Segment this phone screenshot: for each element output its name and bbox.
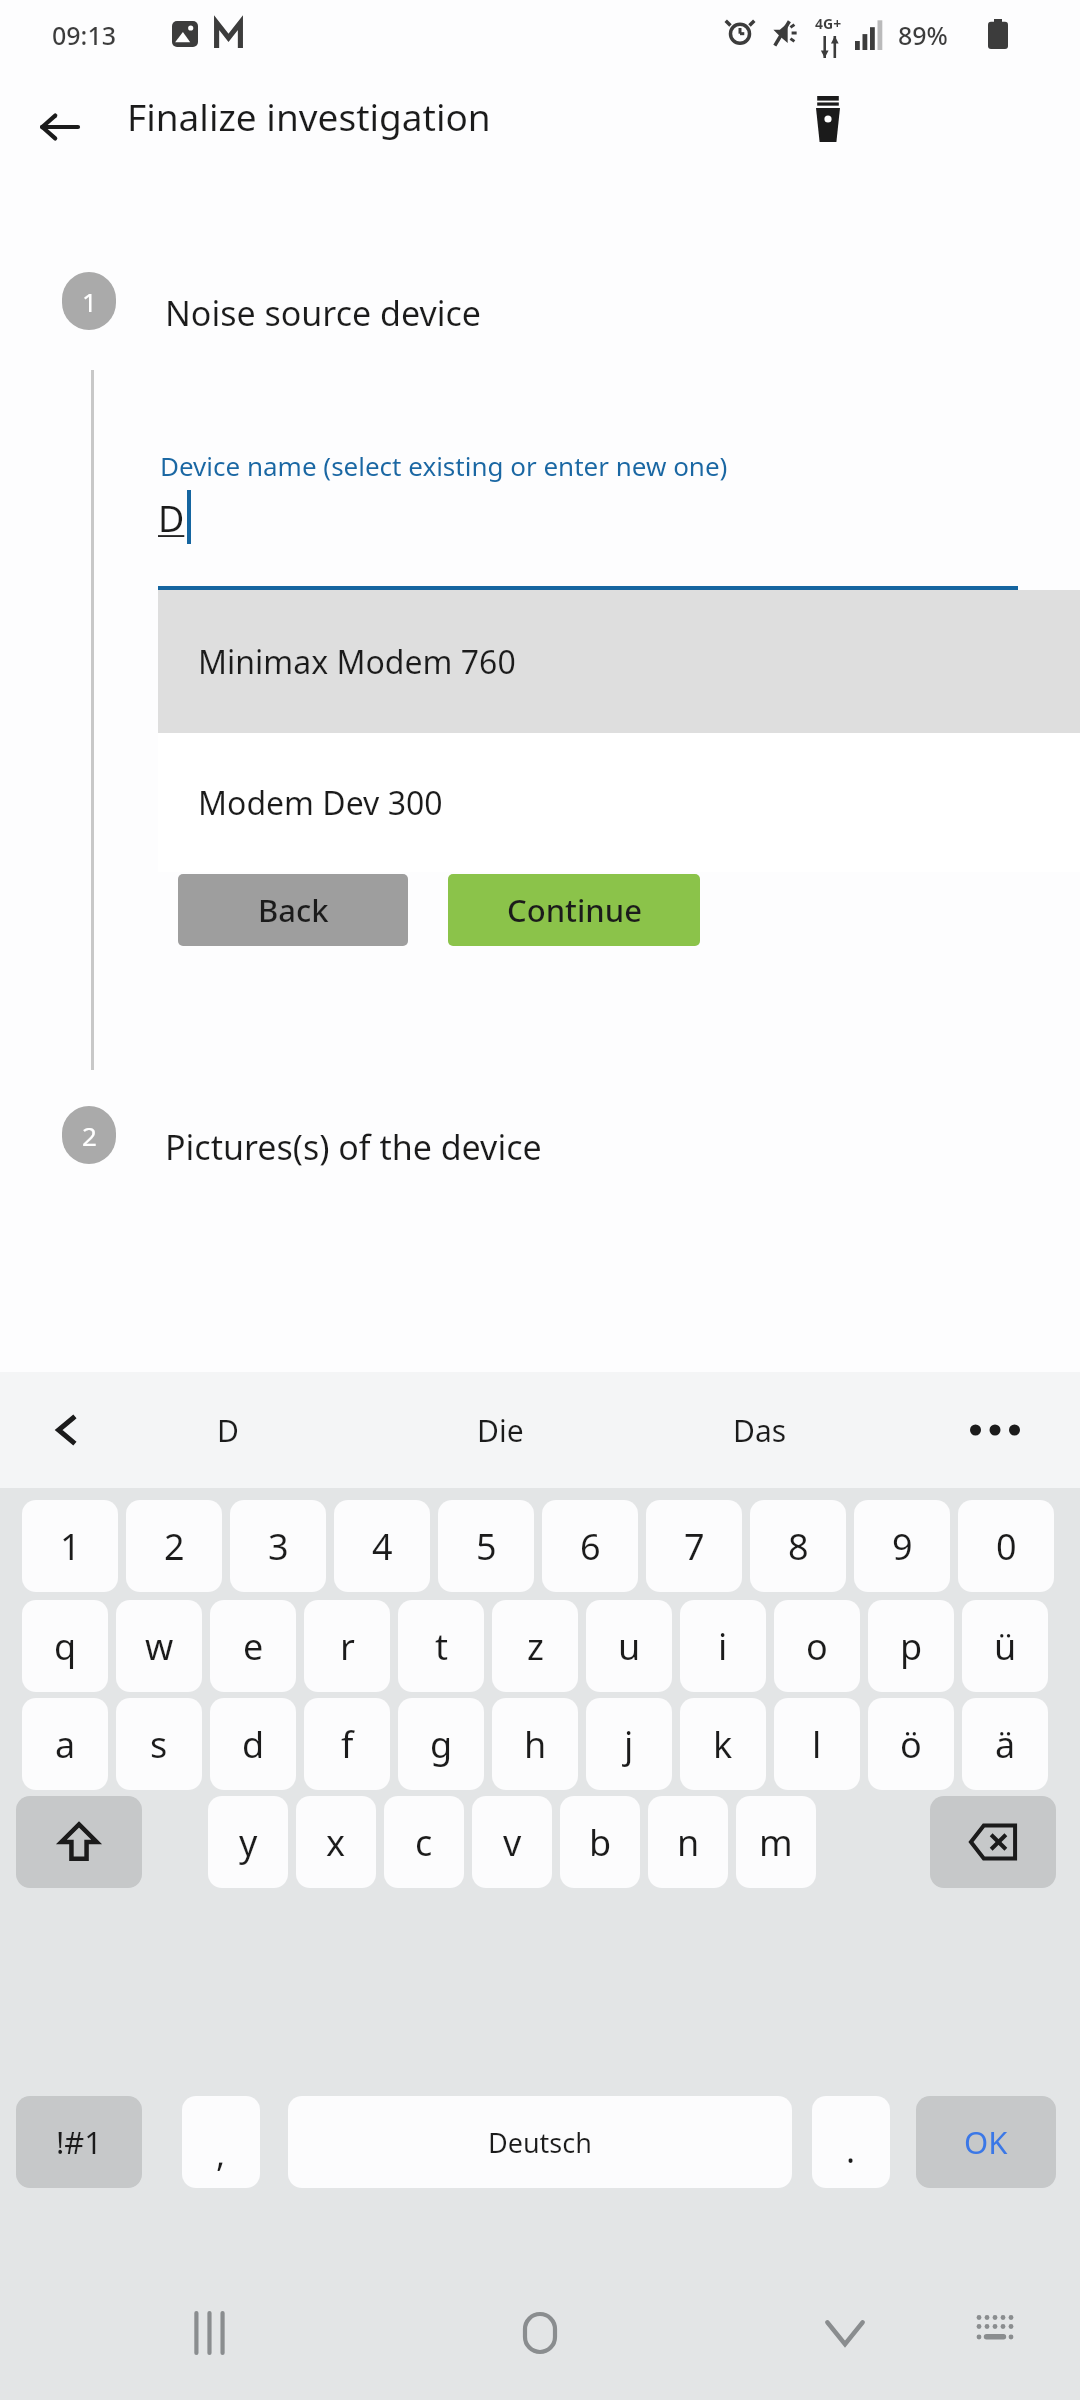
button[interactable]: , xyxy=(182,2096,260,2188)
staticText: y xyxy=(239,1818,258,1867)
button[interactable]: h xyxy=(492,1698,578,1790)
button[interactable]: c xyxy=(384,1796,464,1888)
button[interactable]: a xyxy=(22,1698,108,1790)
button[interactable]: Home xyxy=(485,2278,595,2388)
button[interactable]: D xyxy=(128,1372,328,1488)
button[interactable]: 9 xyxy=(854,1500,950,1592)
staticText: u xyxy=(618,1622,641,1671)
staticText: Deutsch xyxy=(488,2124,592,2161)
button[interactable]: f xyxy=(304,1698,390,1790)
staticText: 8 xyxy=(788,1522,809,1571)
staticText: j xyxy=(624,1720,634,1769)
button[interactable]: w xyxy=(116,1600,202,1692)
button[interactable]: q xyxy=(22,1600,108,1692)
staticText: q xyxy=(54,1622,77,1671)
staticText: c xyxy=(415,1818,433,1867)
staticText: z xyxy=(527,1622,544,1671)
button[interactable]: 3 xyxy=(230,1500,326,1592)
staticText: e xyxy=(243,1622,264,1671)
button[interactable]: Modem Dev 300 xyxy=(158,733,1080,872)
button[interactable]: . xyxy=(812,2096,890,2188)
button[interactable]: l xyxy=(774,1698,860,1790)
staticText: s xyxy=(150,1720,168,1769)
button[interactable]: 6 xyxy=(542,1500,638,1592)
button[interactable]: Recents xyxy=(155,2278,265,2388)
button[interactable]: e xyxy=(210,1600,296,1692)
button[interactable]: Backspace xyxy=(930,1796,1056,1888)
button[interactable]: More options xyxy=(940,1372,1050,1488)
button[interactable]: 2 xyxy=(126,1500,222,1592)
staticText: t xyxy=(435,1622,448,1671)
staticText: m xyxy=(759,1818,793,1867)
button[interactable]: o xyxy=(774,1600,860,1692)
button[interactable]: Previous suggestions xyxy=(22,1372,112,1488)
staticText: o xyxy=(806,1622,828,1671)
staticText: 6 xyxy=(580,1522,601,1571)
button[interactable]: j xyxy=(586,1698,672,1790)
staticText: 4 xyxy=(372,1522,393,1571)
button[interactable]: 5 xyxy=(438,1500,534,1592)
button[interactable]: Change keyboard xyxy=(945,2278,1045,2378)
button[interactable]: p xyxy=(868,1600,954,1692)
button[interactable]: 0 xyxy=(958,1500,1054,1592)
staticText: Modem Dev 300 xyxy=(198,781,443,825)
button[interactable]: Minimax Modem 760 xyxy=(158,590,1080,733)
button[interactable]: !#1 xyxy=(16,2096,142,2188)
staticText: 5 xyxy=(476,1522,497,1571)
button[interactable]: k xyxy=(680,1698,766,1790)
staticText: 7 xyxy=(684,1522,705,1571)
button[interactable]: 8 xyxy=(750,1500,846,1592)
staticText: 2 xyxy=(164,1522,185,1571)
button[interactable]: d xyxy=(210,1698,296,1790)
button[interactable]: 1 xyxy=(22,1500,118,1592)
staticText: 1 xyxy=(82,284,97,319)
staticText: i xyxy=(718,1622,728,1671)
button[interactable]: Das xyxy=(660,1372,860,1488)
button[interactable]: n xyxy=(648,1796,728,1888)
staticText: ü xyxy=(994,1622,1017,1671)
button[interactable]: ö xyxy=(868,1698,954,1790)
button[interactable]: Back xyxy=(178,874,408,946)
button[interactable]: t xyxy=(398,1600,484,1692)
button[interactable]: m xyxy=(736,1796,816,1888)
staticText: 4G+ xyxy=(815,14,842,33)
staticText: Minimax Modem 760 xyxy=(198,640,516,684)
button[interactable]: s xyxy=(116,1698,202,1790)
button[interactable]: u xyxy=(586,1600,672,1692)
button[interactable]: g xyxy=(398,1698,484,1790)
staticText: . xyxy=(846,2127,856,2173)
staticText: p xyxy=(900,1622,923,1671)
staticText: 9 xyxy=(892,1522,913,1571)
staticText: h xyxy=(524,1720,547,1769)
button[interactable]: v xyxy=(472,1796,552,1888)
button[interactable]: Deutsch xyxy=(288,2096,792,2188)
button[interactable]: r xyxy=(304,1600,390,1692)
button[interactable]: 7 xyxy=(646,1500,742,1592)
staticText: D xyxy=(158,494,185,543)
button[interactable]: Flashlight xyxy=(795,86,861,152)
staticText: Das xyxy=(733,1410,787,1451)
button[interactable]: Hide keyboard xyxy=(790,2278,900,2388)
button[interactable]: OK xyxy=(916,2096,1056,2188)
button[interactable]: b xyxy=(560,1796,640,1888)
staticText: Finalize investigation xyxy=(127,91,491,141)
button[interactable]: i xyxy=(680,1600,766,1692)
button[interactable]: Continue xyxy=(448,874,700,946)
button[interactable]: Die xyxy=(400,1372,600,1488)
staticText: Noise source device xyxy=(165,290,481,336)
staticText: 1 xyxy=(60,1522,81,1571)
staticText: n xyxy=(677,1818,700,1867)
staticText: Device name (select existing or enter ne… xyxy=(160,448,728,483)
button[interactable]: z xyxy=(492,1600,578,1692)
button[interactable]: Shift xyxy=(16,1796,142,1888)
button[interactable]: ä xyxy=(962,1698,1048,1790)
staticText: k xyxy=(713,1720,733,1769)
staticText: , xyxy=(216,2131,226,2177)
staticText: OK xyxy=(964,2121,1008,2163)
button[interactable]: 4 xyxy=(334,1500,430,1592)
button[interactable]: ü xyxy=(962,1600,1048,1692)
button[interactable]: Back xyxy=(22,90,96,164)
staticText: l xyxy=(812,1720,822,1769)
button[interactable]: y xyxy=(208,1796,288,1888)
button[interactable]: x xyxy=(296,1796,376,1888)
